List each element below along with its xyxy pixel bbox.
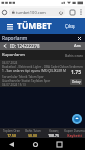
button[interactable]: Back [0, 138, 23, 150]
button[interactable]: Home [23, 138, 47, 150]
button[interactable]: Scroll to top [72, 114, 82, 124]
button[interactable]: Close [75, 34, 84, 42]
staticText: ID: 124222278 [10, 43, 40, 49]
staticText: Bahis oranı [65, 53, 83, 58]
staticText: 108.75 [48, 133, 59, 138]
staticText: TÜMBET [17, 20, 52, 32]
staticText: 50.00 [28, 133, 37, 138]
staticText: Kaybetti [67, 133, 82, 138]
staticText: 04.07.2024 15:13 [2, 83, 26, 87]
button[interactable]: Tabs [67, 6, 77, 18]
button[interactable]: Ara [74, 43, 81, 49]
staticText: tumbet100.com [16, 10, 46, 15]
staticText: Bahis Tutarı [25, 129, 41, 133]
staticText: 1.75 [71, 69, 81, 76]
staticText: Raporlarım [2, 35, 28, 42]
staticText: Kupon Durumu [64, 129, 85, 133]
staticText: Basketbol - Elektronik Ligler - OBA Cade… [2, 65, 83, 69]
staticText: Çıkış [65, 23, 75, 29]
button[interactable]: Home [0, 6, 9, 18]
staticText: Sorumlular Teknik Takım Spor [2, 75, 44, 79]
button[interactable]: Çıkış [54, 18, 85, 34]
staticText: Kazanç [49, 129, 59, 133]
button[interactable]: Detay [70, 79, 82, 85]
staticText: Toplam Oran [3, 129, 20, 133]
button[interactable]: tumbet100.com [9, 8, 65, 16]
staticText: 04.07.2024 [2, 61, 18, 65]
button[interactable]: More options [77, 6, 85, 18]
button[interactable]: Recent apps [47, 138, 71, 150]
staticText: Güzelhaneler Statist Tayfaları Spor [2, 79, 51, 83]
staticText: 1 - Sarı anlarını tipi oyunu (MS) ÇELİKL… [2, 69, 66, 73]
staticText: 17.50 [7, 133, 16, 138]
button[interactable]: Menu [0, 18, 19, 34]
button[interactable]: Back [0, 42, 10, 50]
staticText: Detay [72, 80, 81, 84]
staticText: Kuponlarım [2, 52, 26, 58]
staticText: Ara [74, 43, 81, 49]
